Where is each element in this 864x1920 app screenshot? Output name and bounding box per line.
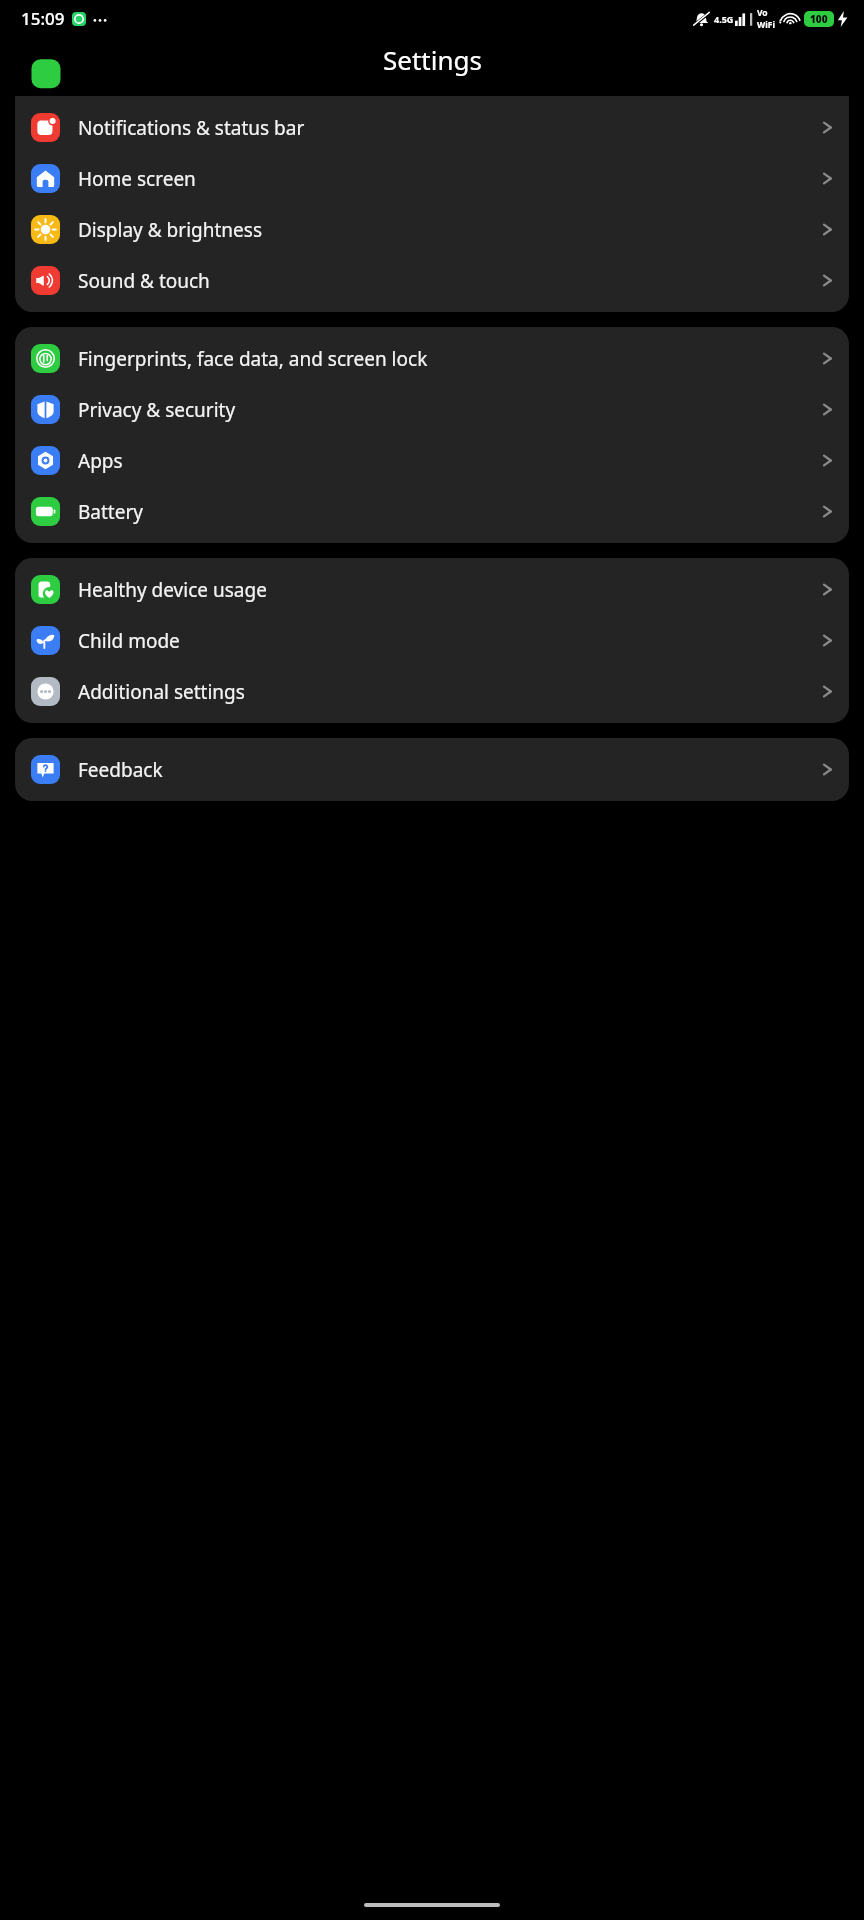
button[interactable]: Fingerprints, face data, and screen lock bbox=[15, 333, 849, 384]
staticText: Battery bbox=[78, 499, 812, 525]
staticText: Apps bbox=[78, 448, 812, 474]
staticText: Notifications & status bar bbox=[78, 115, 812, 141]
button[interactable]: Notifications & status bar bbox=[15, 102, 849, 153]
staticText: Vo bbox=[757, 7, 768, 19]
staticText: Sound & touch bbox=[78, 268, 812, 294]
button[interactable]: Sound & touch bbox=[15, 255, 849, 306]
staticText: Privacy & security bbox=[78, 397, 812, 423]
button[interactable]: Display & brightness bbox=[15, 204, 849, 255]
button[interactable]: Feedback bbox=[15, 744, 849, 795]
button[interactable]: Battery bbox=[15, 486, 849, 537]
staticText: Child mode bbox=[78, 628, 812, 654]
staticText: Additional settings bbox=[78, 679, 812, 705]
button[interactable]: Healthy device usage bbox=[15, 564, 849, 615]
staticText: 4.5G bbox=[714, 13, 734, 25]
button[interactable]: Additional settings bbox=[15, 666, 849, 717]
staticText: Settings bbox=[383, 42, 482, 77]
staticText: WiFi bbox=[757, 19, 775, 31]
staticText: Healthy device usage bbox=[78, 577, 812, 603]
button[interactable]: Home screen bbox=[15, 153, 849, 204]
button[interactable]: Child mode bbox=[15, 615, 849, 666]
staticText: 15:09 bbox=[21, 7, 65, 30]
button[interactable]: Privacy & security bbox=[15, 384, 849, 435]
staticText: 100 bbox=[810, 12, 828, 26]
staticText: Home screen bbox=[78, 166, 812, 192]
button[interactable]: Apps bbox=[15, 435, 849, 486]
staticText: Feedback bbox=[78, 757, 812, 783]
staticText: Display & brightness bbox=[78, 217, 812, 243]
staticText: Fingerprints, face data, and screen lock bbox=[78, 346, 812, 372]
